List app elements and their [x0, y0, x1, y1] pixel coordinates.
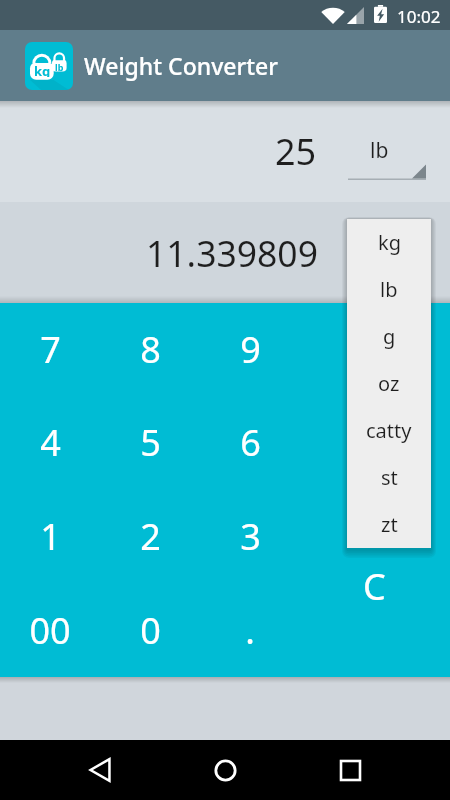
staticText: oz	[378, 370, 400, 397]
button[interactable]: 0	[100, 583, 200, 677]
button[interactable]: Weight Converter icon	[25, 42, 73, 90]
staticText: 2	[140, 512, 161, 561]
button[interactable]: catty	[347, 407, 431, 454]
button[interactable]: zt	[347, 501, 431, 548]
button[interactable]: Back	[75, 740, 125, 800]
staticText: 3	[240, 512, 261, 561]
button[interactable]: lb	[347, 266, 431, 313]
button[interactable]: Recent apps	[325, 740, 375, 800]
staticText: 4	[40, 418, 61, 467]
button[interactable]: C	[300, 490, 450, 677]
button[interactable]: 3	[200, 489, 300, 583]
staticText: 6	[240, 418, 261, 467]
button[interactable]: Unit selector lb	[348, 130, 426, 180]
staticText: kg	[378, 229, 401, 256]
button[interactable]: 2	[100, 489, 200, 583]
staticText: 7	[40, 325, 61, 374]
button[interactable]: st	[347, 454, 431, 501]
button[interactable]: kg	[347, 219, 431, 266]
staticText: 10:02	[397, 5, 441, 28]
button[interactable]: 8	[100, 303, 200, 396]
staticText: 0	[140, 606, 161, 655]
button[interactable]: Home	[200, 740, 250, 800]
staticText: g	[383, 323, 396, 350]
staticText: 1	[40, 512, 61, 561]
button[interactable]: 1	[0, 489, 100, 583]
staticText: .	[245, 606, 255, 655]
staticText: kg	[34, 62, 51, 77]
staticText: catty	[366, 417, 412, 444]
staticText: st	[381, 464, 398, 491]
button[interactable]: 5	[100, 396, 200, 489]
button[interactable]: .	[200, 583, 300, 677]
staticText: zt	[381, 511, 398, 538]
button[interactable]: 9	[200, 303, 300, 396]
staticText: 9	[240, 325, 261, 374]
staticText: 25	[275, 127, 317, 176]
staticText: lb	[55, 61, 64, 72]
staticText: 00	[29, 606, 71, 655]
staticText: 8	[140, 325, 161, 374]
staticText: 5	[140, 418, 161, 467]
button[interactable]: oz	[347, 360, 431, 407]
button[interactable]: g	[347, 313, 431, 360]
button[interactable]: 4	[0, 396, 100, 489]
staticText: lb	[380, 276, 398, 303]
staticText: 11.339809	[146, 229, 318, 277]
staticText: Weight Converter	[84, 50, 278, 81]
staticText: lb	[370, 136, 389, 165]
button[interactable]: 6	[200, 396, 300, 489]
button[interactable]: 00	[0, 583, 100, 677]
button[interactable]: 7	[0, 303, 100, 396]
staticText: C	[363, 562, 386, 611]
